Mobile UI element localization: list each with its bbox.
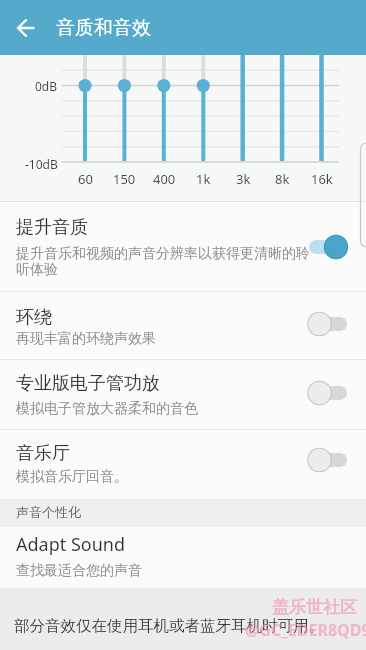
staticText: 60 — [78, 170, 93, 188]
staticText: 查找最适合您的声音 — [16, 562, 142, 580]
staticText: 3k — [236, 170, 251, 188]
button[interactable] — [308, 234, 348, 260]
staticText: 150 — [113, 170, 136, 188]
staticText: 声音个性化 — [16, 504, 81, 520]
staticText: 模拟音乐厅回音。 — [16, 468, 128, 486]
staticText: 专业版电子管功放 — [16, 372, 160, 395]
staticText: @GC_EDER8QD9 — [245, 619, 366, 641]
staticText: 部分音效仅在使用耳机或者蓝牙耳机时可用。 — [14, 616, 324, 636]
staticText: 0dB — [35, 78, 58, 94]
staticText: Adapt Sound — [16, 532, 126, 557]
staticText: 环绕 — [16, 306, 52, 329]
staticText: 盖乐世社区 — [272, 597, 357, 618]
button[interactable] — [308, 311, 348, 337]
button[interactable]: 提升音质 — [0, 202, 366, 292]
staticText: 提升音质 — [16, 216, 88, 239]
button[interactable]: 专业版电子管功放 — [0, 360, 366, 430]
button[interactable] — [0, 0, 52, 55]
button[interactable]: 环绕 — [0, 292, 366, 360]
staticText: 1k — [196, 170, 211, 188]
staticText: 8k — [275, 170, 290, 188]
button[interactable] — [308, 380, 348, 406]
staticText: 400 — [153, 170, 176, 188]
staticText: -10dB — [25, 156, 58, 172]
staticText: 音质和音效 — [56, 16, 151, 40]
button[interactable]: 音乐厅 — [0, 430, 366, 499]
staticText: 音乐厅 — [16, 442, 70, 465]
staticText: 听体验 — [16, 261, 58, 279]
staticText: 模拟电子管放大器柔和的音色 — [16, 400, 198, 418]
staticText: 再现丰富的环绕声效果 — [16, 330, 156, 348]
button[interactable] — [308, 447, 348, 473]
staticText: 提升音乐和视频的声音分辨率以获得更清晰的聆 — [16, 245, 310, 263]
staticText: 16k — [311, 170, 333, 188]
button[interactable]: Adapt Sound — [0, 527, 366, 588]
